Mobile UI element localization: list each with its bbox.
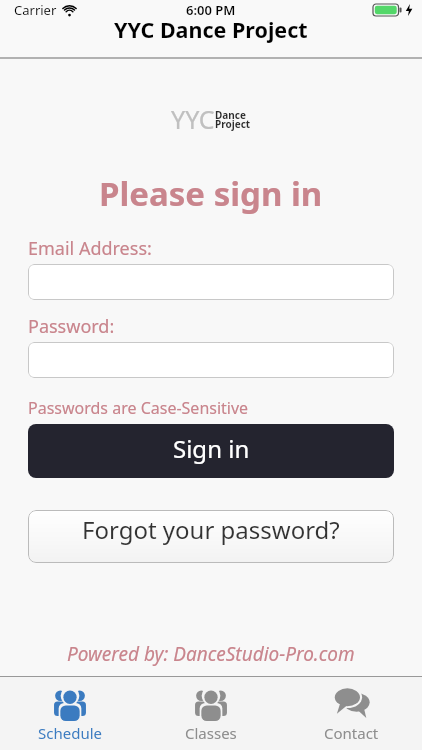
staticText: Passwords are Case-Sensitive	[28, 397, 249, 419]
staticText: Powered by: DanceStudio-Pro.com	[67, 641, 355, 667]
button[interactable]: Forgot your password?	[28, 510, 394, 563]
staticText: Carrier	[14, 1, 57, 19]
staticText: YYC Dance Project	[114, 15, 308, 44]
button[interactable]	[28, 342, 394, 378]
staticText: Schedule	[38, 723, 102, 743]
button[interactable]: Sign in	[28, 424, 394, 478]
staticText: Password:	[28, 314, 115, 339]
staticText: Dance Project	[215, 108, 251, 131]
staticText: Contact	[324, 723, 379, 743]
staticText: Email Address:	[28, 236, 152, 261]
staticText: Please sign in	[99, 171, 323, 216]
button[interactable]: Contact	[281, 677, 422, 750]
button[interactable]: Schedule	[0, 677, 140, 750]
staticText: Forgot your password?	[82, 513, 340, 546]
staticText: 6:00 PM	[186, 1, 236, 19]
button[interactable]	[28, 264, 394, 300]
staticText: Classes	[185, 723, 237, 743]
staticText: Sign in	[173, 432, 250, 465]
button[interactable]: Classes	[140, 677, 281, 750]
staticText: YYC	[171, 102, 215, 136]
